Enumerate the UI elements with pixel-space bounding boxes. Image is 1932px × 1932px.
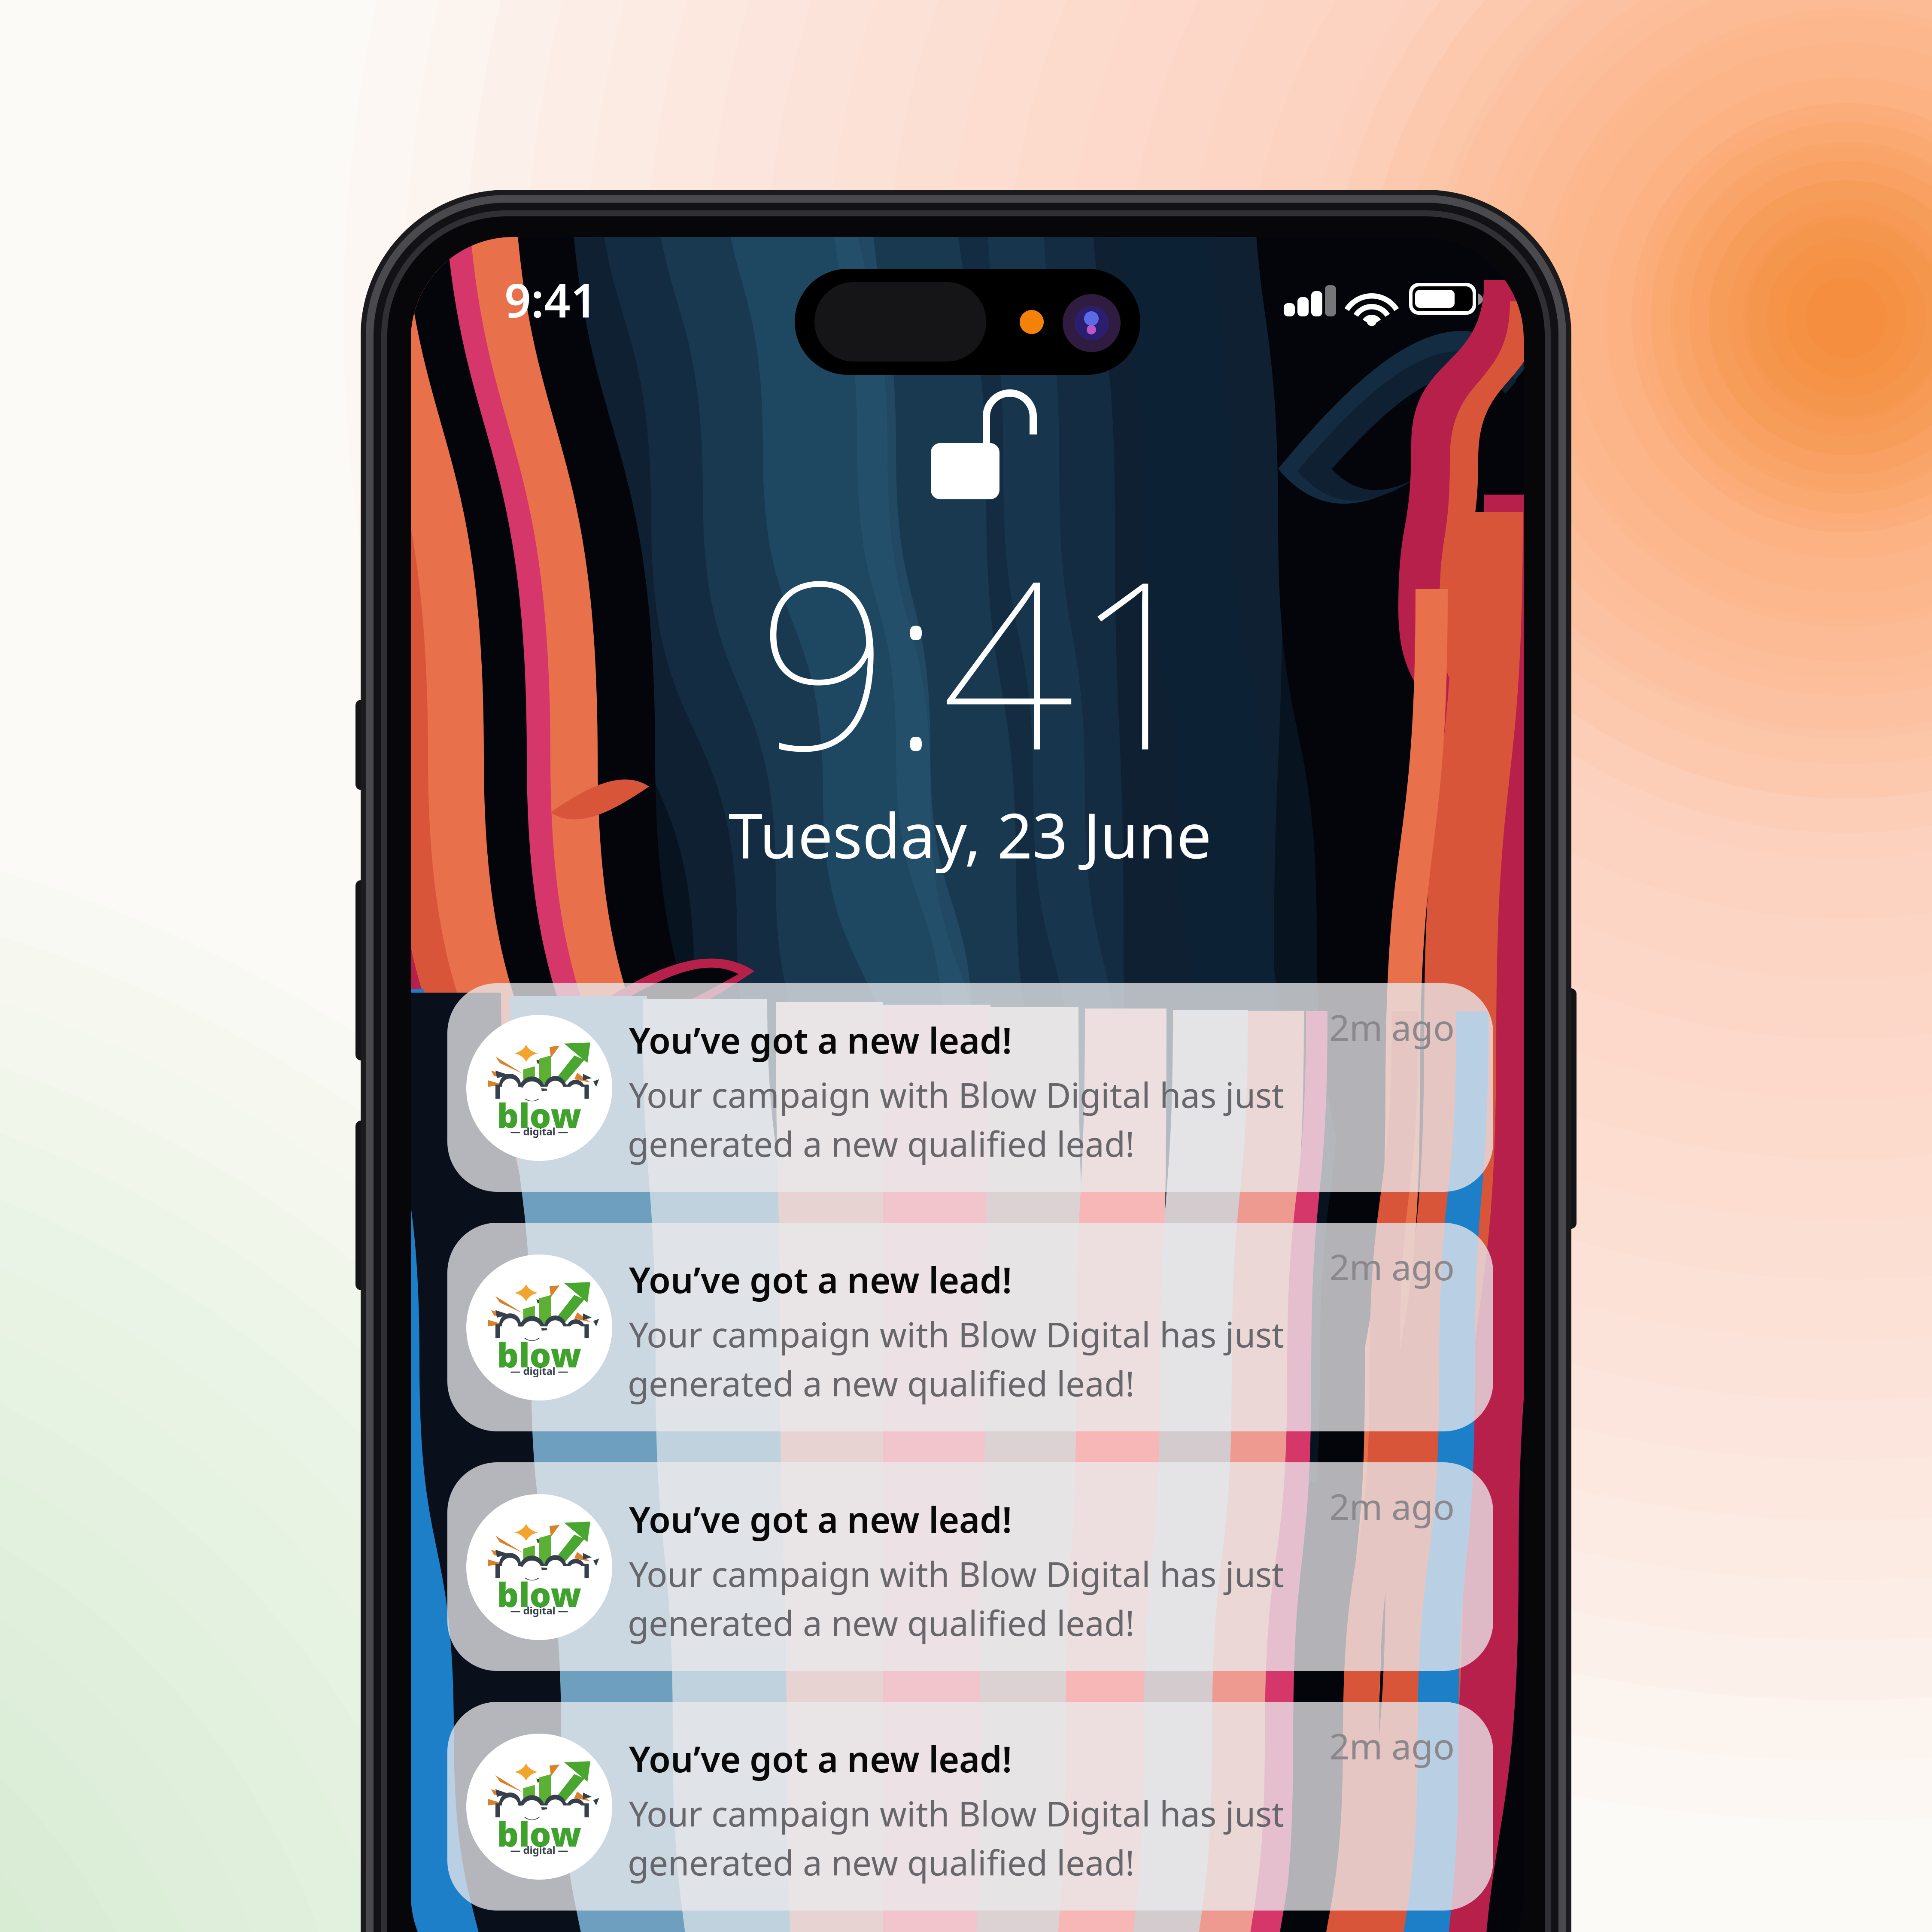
staticText: generated a new qualified lead! — [628, 1839, 1135, 1885]
staticText: 2m ago — [1329, 1003, 1455, 1050]
staticText: Your campaign with Blow Digital has just — [629, 1311, 1284, 1357]
staticText: blow — [497, 1571, 582, 1616]
staticText: You’ve got a new lead! — [629, 1495, 1012, 1543]
staticText: 2m ago — [1329, 1482, 1455, 1530]
button[interactable]: blow — [447, 1223, 1493, 1431]
button[interactable]: blow — [447, 983, 1493, 1192]
staticText: — digital — — [510, 1604, 568, 1617]
staticText: Your campaign with Blow Digital has just — [629, 1551, 1284, 1596]
staticText: — digital — — [510, 1124, 568, 1138]
staticText: You’ve got a new lead! — [629, 1016, 1012, 1063]
staticText: blow — [497, 1092, 582, 1137]
staticText: You’ve got a new lead! — [629, 1256, 1012, 1303]
staticText: generated a new qualified lead! — [628, 1360, 1135, 1406]
staticText: — digital — — [510, 1843, 568, 1857]
staticText: 9:41 — [504, 269, 597, 330]
button[interactable]: blow — [447, 1462, 1493, 1671]
staticText: 2m ago — [1329, 1722, 1455, 1769]
staticText: Your campaign with Blow Digital has just — [629, 1790, 1284, 1836]
staticText: Tuesday, 23 June — [728, 793, 1211, 875]
staticText: 2m ago — [1329, 1243, 1455, 1290]
staticText: generated a new qualified lead! — [628, 1600, 1135, 1645]
staticText: blow — [497, 1332, 582, 1377]
button[interactable]: blow — [447, 1702, 1493, 1911]
staticText: generated a new qualified lead! — [628, 1121, 1135, 1166]
staticText: 9:41 — [757, 505, 1206, 814]
staticText: Your campaign with Blow Digital has just — [629, 1072, 1284, 1117]
staticText: blow — [497, 1811, 582, 1856]
staticText: — digital — — [510, 1364, 568, 1378]
staticText: You’ve got a new lead! — [629, 1735, 1012, 1782]
